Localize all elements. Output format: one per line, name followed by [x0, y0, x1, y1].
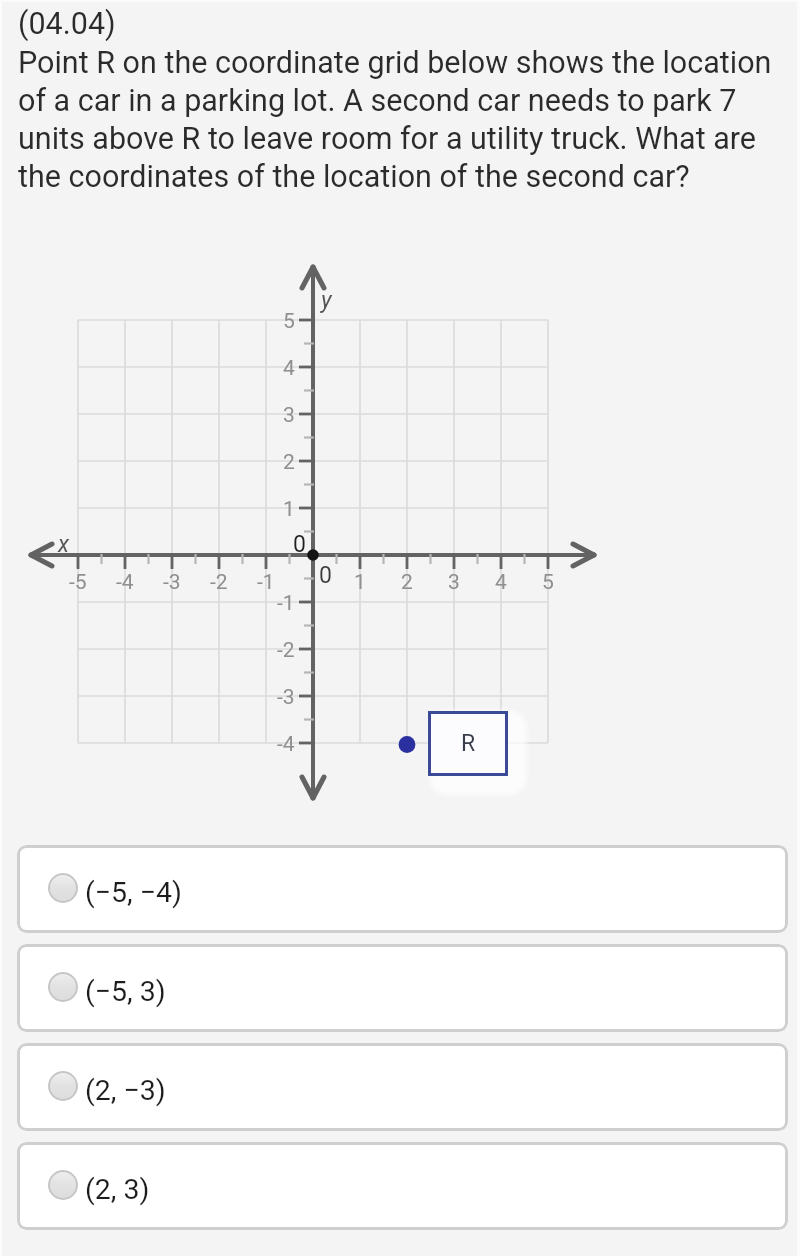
- staticText: -3: [277, 685, 295, 710]
- staticText: 1: [283, 497, 295, 522]
- staticText: -5: [69, 570, 87, 595]
- staticText: -2: [210, 570, 228, 595]
- staticText: -1: [277, 591, 295, 616]
- staticText: -3: [163, 570, 181, 595]
- staticText: 2: [283, 450, 295, 475]
- staticText: 2: [401, 570, 413, 595]
- staticText: x: [58, 531, 70, 558]
- staticText: 5: [283, 309, 295, 334]
- staticText: 0: [319, 562, 332, 589]
- button[interactable]: (2, 3): [17, 1142, 788, 1230]
- staticText: (−5, −4): [85, 876, 182, 909]
- staticText: 0: [293, 531, 306, 558]
- staticText: 1: [354, 570, 366, 595]
- staticText: 3: [283, 403, 295, 428]
- staticText: Point R on the coordinate grid below sho…: [18, 45, 786, 195]
- staticText: 3: [448, 570, 460, 595]
- staticText: 5: [542, 570, 554, 595]
- staticText: 4: [283, 356, 295, 381]
- staticText: -4: [116, 570, 134, 595]
- button[interactable]: (−5, 3): [17, 944, 788, 1032]
- staticText: R: [461, 730, 476, 757]
- button[interactable]: (−5, −4): [17, 845, 788, 933]
- button[interactable]: (2, −3): [17, 1043, 788, 1131]
- staticText: -4: [277, 732, 295, 757]
- staticText: y: [321, 287, 332, 314]
- staticText: (04.04): [18, 6, 116, 42]
- staticText: -2: [277, 638, 295, 663]
- staticText: 4: [495, 570, 507, 595]
- staticText: (2, 3): [85, 1173, 150, 1206]
- staticText: -1: [257, 570, 275, 595]
- staticText: (2, −3): [85, 1074, 166, 1107]
- staticText: (−5, 3): [85, 975, 166, 1008]
